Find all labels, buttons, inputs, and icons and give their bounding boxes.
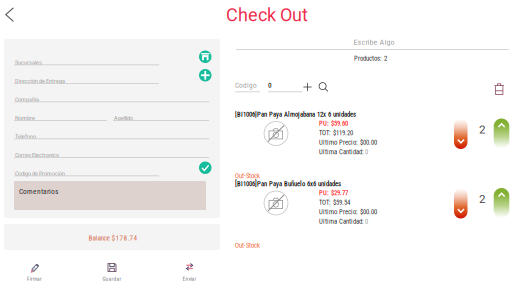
staticText: Ultimo Precio: $00.00 xyxy=(319,138,377,146)
staticText: Ultimo Precio: $00.00 xyxy=(319,208,377,216)
button[interactable]: Guardar xyxy=(88,260,136,284)
staticText: Comentarios xyxy=(19,187,58,196)
button[interactable]: Balance $178.74 xyxy=(4,224,220,250)
staticText: 0 xyxy=(268,81,272,90)
staticText: TOT: $119.20 xyxy=(319,129,353,137)
button[interactable]: Sucursales xyxy=(199,50,211,63)
staticText: Check Out xyxy=(226,4,308,26)
staticText: 2 xyxy=(479,192,486,206)
button[interactable]: Disminuir xyxy=(454,188,467,218)
button[interactable]: Firmar xyxy=(10,260,58,284)
staticText: PU: $29.77 xyxy=(319,189,348,197)
staticText: Compañia xyxy=(15,96,39,103)
button[interactable]: Enviar xyxy=(166,260,214,284)
staticText: Dirección de Entrega xyxy=(15,77,65,84)
staticText: Ultima Cantidad: xyxy=(319,148,364,156)
staticText: [BI1006]Pan Paya Buñuelo 6x6 unidades xyxy=(235,180,341,188)
staticText: Codigo de Promoción xyxy=(15,170,65,177)
button[interactable]: Aplicar codigo xyxy=(199,161,211,174)
staticText: 0 xyxy=(365,148,368,156)
staticText: Escribe Algo xyxy=(353,37,394,47)
staticText: Codigo xyxy=(235,81,257,90)
button[interactable]: Agregar direccion xyxy=(199,69,211,81)
staticText: [BI1006]Pan Paya Almojabana 12x 6 unidad… xyxy=(235,110,356,118)
staticText: Out-Stock xyxy=(235,172,260,180)
button[interactable]: Aumentar xyxy=(494,188,509,218)
staticText: TOT: $59.54 xyxy=(319,198,350,206)
staticText: Apellido xyxy=(114,114,133,121)
button[interactable]: Eliminar xyxy=(494,83,504,95)
staticText: Firmar xyxy=(27,276,42,282)
staticText: Telefono xyxy=(15,133,36,140)
staticText: Sucursales xyxy=(15,59,42,66)
button[interactable]: Agregar xyxy=(303,82,312,91)
staticText: Balance $178.74 xyxy=(88,234,137,242)
staticText: Productos: 2 xyxy=(354,54,387,62)
staticText: Correo Electronico xyxy=(15,151,59,158)
button[interactable]: Buscar xyxy=(318,81,328,92)
staticText: Out-Stock xyxy=(235,241,260,249)
staticText: 0 xyxy=(365,217,368,225)
staticText: 2 xyxy=(479,123,486,136)
staticText: Ultima Cantidad: xyxy=(319,217,364,225)
button[interactable]: Aumentar xyxy=(494,118,509,148)
button[interactable]: Disminuir xyxy=(454,119,467,149)
staticText: PU: $59.60 xyxy=(319,119,348,127)
staticText: Guardar xyxy=(102,276,121,282)
staticText: Enviar xyxy=(183,276,197,282)
button[interactable]: Back xyxy=(1,4,23,26)
staticText: Nombre xyxy=(15,114,35,121)
